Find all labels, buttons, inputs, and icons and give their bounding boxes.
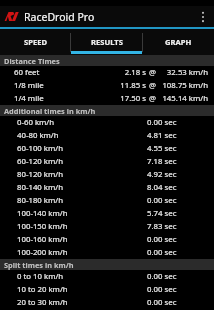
staticText: 5.74 sec (147, 208, 177, 219)
staticText: @ (149, 93, 157, 104)
staticText: 0.00 sec (147, 247, 177, 258)
staticText: 80-140 km/h (17, 182, 64, 193)
button[interactable]: 10 to 20 km/h (0, 283, 214, 296)
staticText: @ (149, 80, 157, 91)
staticText: 100-150 km/h (17, 221, 68, 232)
staticText: 7.83 sec (147, 221, 177, 232)
staticText: 0.00 sec (147, 297, 177, 308)
button[interactable]: 0-60 km/h (0, 116, 214, 129)
staticText: RaceDroid Pro (24, 10, 95, 24)
staticText: 0.00 sec (147, 271, 177, 282)
button[interactable]: 100-140 km/h (0, 207, 214, 220)
button[interactable]: 80-140 km/h (0, 181, 214, 194)
staticText: 0.00 sec (147, 195, 177, 206)
staticText: 40-80 km/h (17, 130, 59, 141)
button[interactable]: 100-200 km/h (0, 246, 214, 259)
staticText: 0-60 km/h (17, 117, 55, 128)
button[interactable]: RESULTS (71, 29, 142, 55)
staticText: 0 to 10 km/h (17, 271, 64, 282)
staticText: 2.18 s (96, 67, 146, 78)
staticText: Additional times in km/h (4, 106, 96, 116)
staticText: 11.85 s (96, 80, 146, 91)
staticText: 4.81 sec (147, 130, 177, 141)
staticText: 100-160 km/h (17, 234, 68, 245)
staticText: 60 feet (14, 67, 40, 78)
button[interactable]: GRAPH (143, 29, 214, 55)
button[interactable]: 100-160 km/h (0, 233, 214, 246)
staticText: 80-180 km/h (17, 195, 64, 206)
staticText: 20 to 30 km/h (17, 297, 68, 308)
staticText: 60-100 km/h (17, 143, 64, 154)
staticText: @ (149, 67, 157, 78)
button[interactable]: 1/4 mile (0, 92, 214, 105)
staticText: RESULTS (91, 37, 123, 47)
button[interactable]: More options (196, 9, 210, 25)
button[interactable]: 40-80 km/h (0, 129, 214, 142)
staticText: 100-200 km/h (17, 247, 68, 258)
staticText: 0.00 sec (147, 284, 177, 295)
staticText: SPEED (24, 37, 47, 47)
staticText: 4.92 sec (147, 169, 177, 180)
staticText: 7.18 sec (147, 156, 177, 167)
staticText: 100-140 km/h (17, 208, 68, 219)
staticText: Split times in km/h (4, 260, 74, 270)
staticText: GRAPH (165, 37, 192, 47)
staticText: Distance Times (4, 56, 60, 66)
staticText: 4.55 sec (147, 143, 177, 154)
staticText: 1/8 mile (14, 80, 44, 91)
button[interactable]: 60-100 km/h (0, 142, 214, 155)
staticText: 32.53 km/h (156, 67, 208, 78)
staticText: 145.14 km/h (156, 93, 208, 104)
button[interactable]: 20 to 30 km/h (0, 296, 214, 309)
button[interactable]: 0 to 10 km/h (0, 270, 214, 283)
button[interactable]: 60-120 km/h (0, 155, 214, 168)
button[interactable]: SPEED (0, 29, 70, 55)
staticText: 0.00 sec (147, 234, 177, 245)
staticText: 1/4 mile (14, 93, 44, 104)
button[interactable]: 80-180 km/h (0, 194, 214, 207)
button[interactable]: 100-150 km/h (0, 220, 214, 233)
staticText: 8.04 sec (147, 182, 177, 193)
staticText: 10 to 20 km/h (17, 284, 68, 295)
staticText: 108.75 km/h (156, 80, 208, 91)
staticText: 0.00 sec (147, 117, 177, 128)
button[interactable]: 80-120 km/h (0, 168, 214, 181)
button[interactable]: 1/8 mile (0, 79, 214, 92)
button[interactable]: 60 feet (0, 66, 214, 79)
staticText: 17.50 s (96, 93, 146, 104)
staticText: 60-120 km/h (17, 156, 64, 167)
staticText: 80-120 km/h (17, 169, 64, 180)
